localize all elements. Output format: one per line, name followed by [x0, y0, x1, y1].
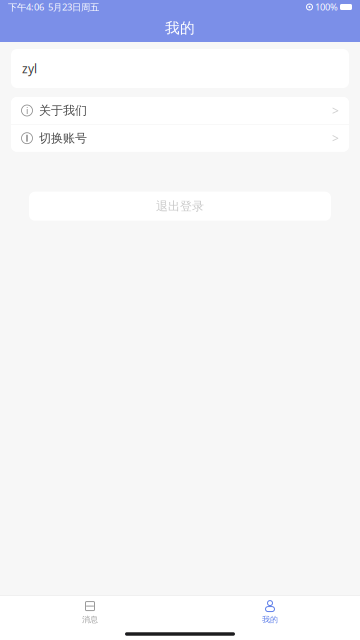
button[interactable]: 退出登录 [29, 192, 331, 221]
staticText: 退出登录 [156, 199, 204, 213]
staticText: 下午4:06 5月23日周五 [8, 1, 99, 13]
staticText: 消息 [82, 615, 98, 624]
staticText: > [332, 102, 339, 118]
staticText: 我的 [165, 19, 195, 37]
staticText: 100% [315, 1, 338, 13]
staticText: zyl [22, 60, 37, 76]
staticText: i [26, 104, 28, 117]
staticText: 切换账号 [39, 131, 87, 145]
button[interactable]: 切换账号 [11, 125, 349, 152]
button[interactable]: i [11, 97, 349, 124]
button[interactable]: 我的 [235, 597, 305, 627]
button[interactable]: 消息 [55, 597, 125, 627]
staticText: 我的 [262, 615, 278, 624]
staticText: 关于我们 [39, 103, 87, 118]
staticText: > [332, 130, 339, 146]
